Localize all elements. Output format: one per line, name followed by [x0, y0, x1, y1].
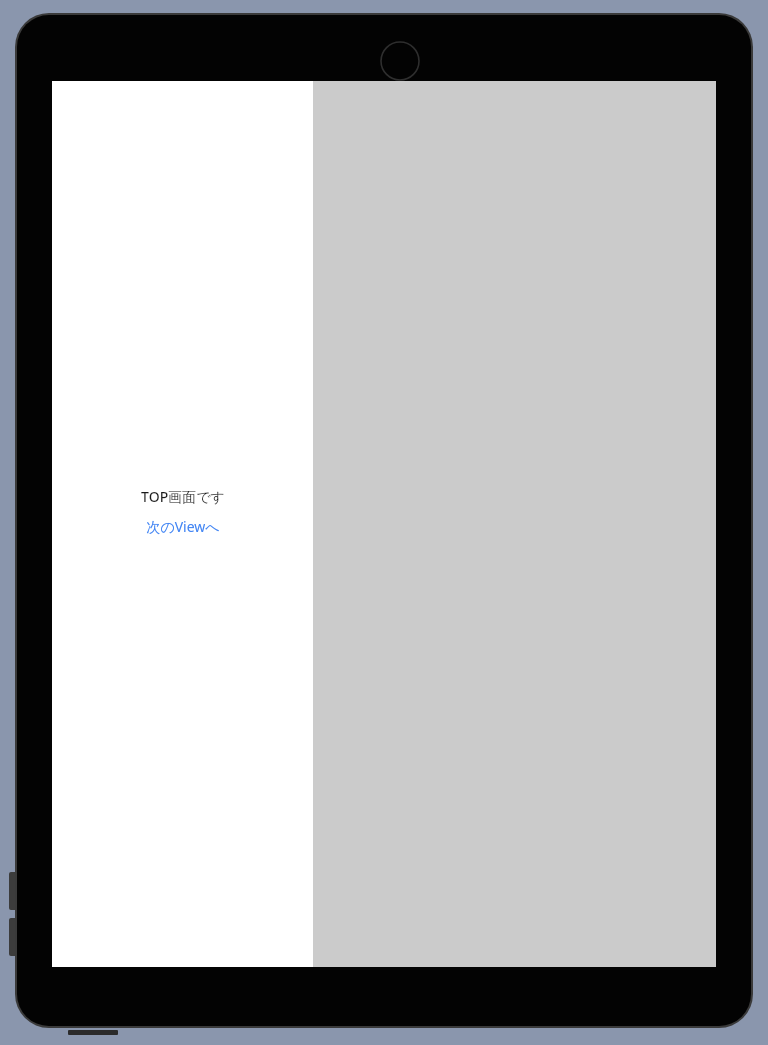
staticText: TOP画面です: [141, 487, 225, 506]
button[interactable]: 次のViewへ: [142, 516, 224, 537]
button[interactable]: Home: [366, 27, 434, 95]
staticText: 次のViewへ: [146, 517, 220, 536]
